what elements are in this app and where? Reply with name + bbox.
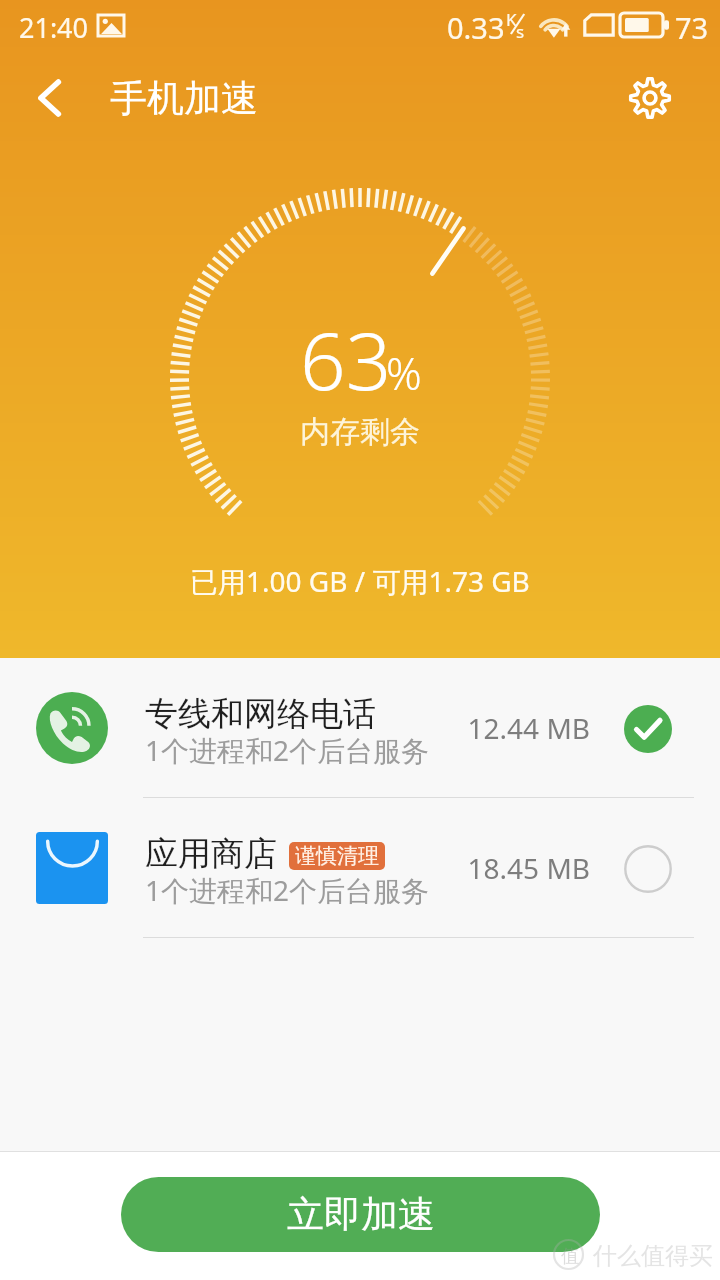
staticText: 已用1.00 GB / 可用1.73 GB — [190, 562, 530, 600]
staticText: 值 — [561, 1245, 579, 1268]
staticText: 12.44 MB — [467, 709, 590, 747]
staticText: 18.45 MB — [467, 849, 590, 887]
staticText: 内存剩余 — [300, 413, 420, 451]
staticText: 谨慎清理 — [295, 843, 379, 869]
button[interactable]: 立即加速 — [121, 1177, 600, 1252]
button[interactable]: Not selected — [620, 841, 676, 897]
staticText: 应用商店 — [145, 833, 277, 875]
staticText: 专线和网络电话 — [145, 693, 376, 735]
staticText: 63 — [300, 304, 392, 413]
staticText: 1个进程和2个后台服务 — [145, 731, 430, 769]
staticText: 1个进程和2个后台服务 — [145, 871, 430, 909]
staticText: K — [506, 8, 517, 31]
staticText: 手机加速 — [110, 75, 258, 122]
button[interactable]: 应用商店 — [0, 798, 720, 938]
staticText: % — [386, 343, 422, 403]
staticText: 73 — [675, 8, 709, 47]
staticText: 什么值得买 — [593, 1241, 713, 1271]
staticText: 0.33 — [447, 8, 505, 47]
staticText: 立即加速 — [287, 1191, 435, 1238]
button[interactable]: Back — [14, 62, 86, 134]
staticText: 21:40 — [19, 9, 89, 46]
button[interactable]: 专线和网络电话 — [0, 658, 720, 798]
button[interactable]: Selected — [620, 701, 676, 757]
staticText: s — [516, 20, 525, 43]
button[interactable]: Settings — [620, 68, 680, 128]
